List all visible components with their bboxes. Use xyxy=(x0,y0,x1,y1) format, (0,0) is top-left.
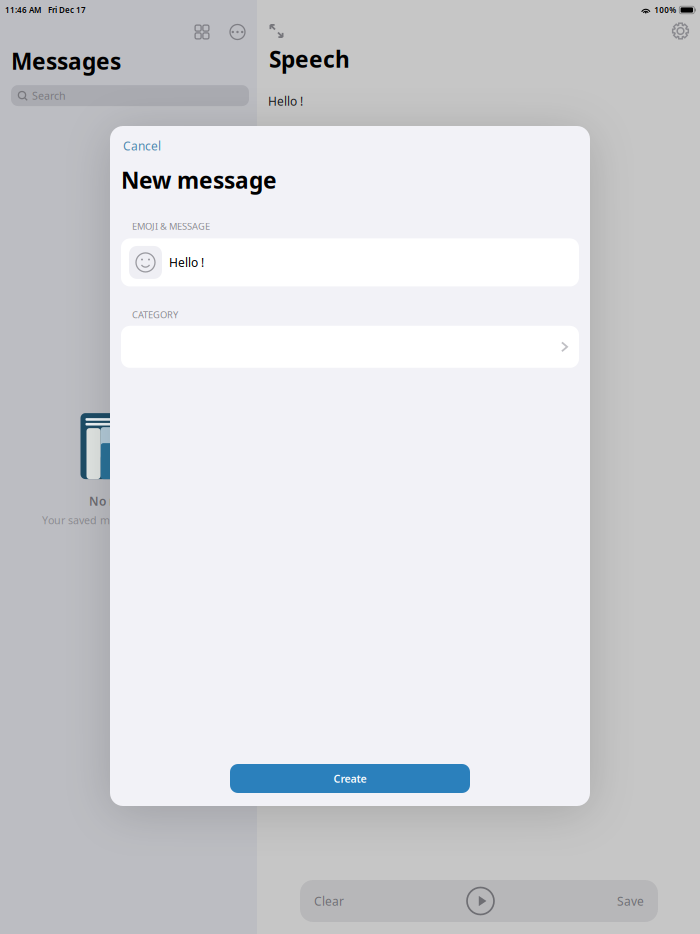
button[interactable]: Save xyxy=(603,885,658,917)
staticText: Speech xyxy=(269,44,350,74)
staticText: No messages xyxy=(89,493,168,509)
staticText: Fri Dec 17 xyxy=(48,5,86,15)
button[interactable]: Settings xyxy=(666,22,695,40)
button[interactable]: Choose emoji xyxy=(129,246,162,279)
button[interactable]: Clear xyxy=(300,885,358,917)
staticText: Hello ! xyxy=(169,254,204,270)
staticText: EMOJI & MESSAGE xyxy=(132,220,210,232)
staticText: New message xyxy=(121,165,277,195)
staticText: CATEGORY xyxy=(132,308,178,321)
staticText: Clear xyxy=(314,893,344,909)
button[interactable] xyxy=(110,326,590,368)
staticText: Search xyxy=(32,88,66,103)
staticText: Save xyxy=(617,893,644,909)
staticText: 11:46 AM xyxy=(5,5,41,15)
button[interactable]: Create xyxy=(230,764,470,793)
button[interactable]: Cancel xyxy=(110,133,174,159)
staticText: Cancel xyxy=(123,138,161,154)
button[interactable]: Expand xyxy=(263,23,290,39)
staticText: Messages xyxy=(11,46,121,76)
staticText: Create xyxy=(333,771,366,786)
staticText: Your saved messages appear here xyxy=(42,513,215,527)
staticText: Hello ! xyxy=(268,93,303,109)
button[interactable]: Play xyxy=(466,887,494,915)
button[interactable]: More xyxy=(224,24,251,40)
button[interactable]: Grid view xyxy=(180,24,224,40)
staticText: 100% xyxy=(654,5,676,15)
